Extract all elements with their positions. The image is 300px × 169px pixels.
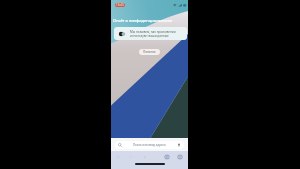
staticText: используют ваши данные [130,34,169,38]
other: Search [118,143,122,147]
button[interactable]: Понятно [139,49,160,55]
staticText: Отчёт о конфиденциальности [113,18,173,23]
button[interactable]: Мы покажем, как приложения [114,27,187,40]
staticText: Мы покажем, как приложения [130,30,176,34]
staticText: Поиск или ввод адреса [133,143,166,147]
other: Voice search [177,143,181,147]
button[interactable]: Search [115,141,184,149]
button[interactable]: Pause [162,152,172,162]
staticText: Понятно [143,50,156,54]
staticText: 15:43 [116,3,124,7]
button[interactable]: Screenshot [175,152,185,162]
